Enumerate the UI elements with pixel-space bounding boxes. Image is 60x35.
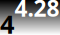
staticText: 4 bbox=[0, 7, 14, 35]
staticText: 4.28 bbox=[14, 0, 59, 23]
